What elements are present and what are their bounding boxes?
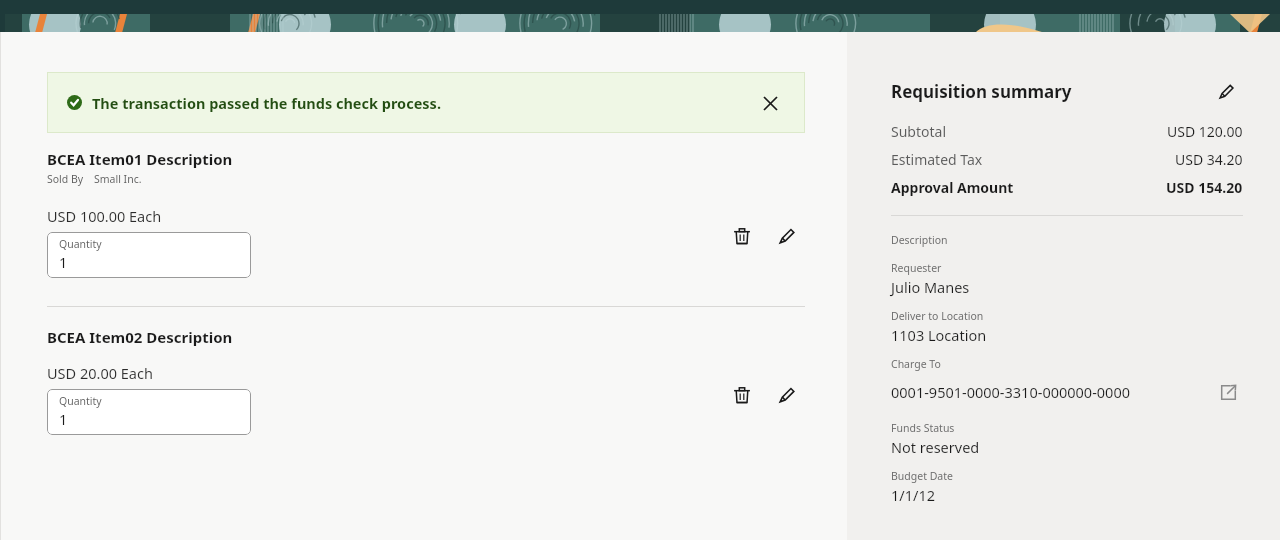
staticText: 0001-9501-0000-3310-000000-0000 xyxy=(891,382,1130,402)
staticText: Julio Manes xyxy=(891,277,970,297)
button[interactable]: Delete item xyxy=(724,377,760,413)
button[interactable]: Open charge account details xyxy=(1213,377,1243,407)
staticText: Charge To xyxy=(891,357,941,371)
staticText: BCEA Item01 Description xyxy=(47,149,233,169)
staticText: USD 120.00 xyxy=(1167,122,1243,141)
staticText: 1/1/12 xyxy=(891,485,935,505)
staticText: Funds Status xyxy=(891,421,955,435)
staticText: USD 34.20 xyxy=(1175,150,1243,169)
staticText: Approval Amount xyxy=(891,178,1014,197)
staticText: Sold By xyxy=(47,172,84,186)
staticText: Quantity xyxy=(59,237,102,251)
staticText: Estimated Tax xyxy=(891,150,983,169)
button[interactable]: Edit requisition summary xyxy=(1209,74,1243,108)
staticText: The transaction passed the funds check p… xyxy=(92,93,441,113)
staticText: Quantity xyxy=(59,394,102,408)
staticText: BCEA Item02 Description xyxy=(47,327,233,347)
button[interactable]: Edit item xyxy=(769,377,805,413)
staticText: USD 154.20 xyxy=(1166,178,1243,197)
staticText: Small Inc. xyxy=(94,172,142,186)
button[interactable]: Dismiss message xyxy=(755,88,785,118)
button[interactable]: Quantity xyxy=(47,389,251,435)
staticText: USD 100.00 Each xyxy=(47,206,162,226)
staticText: Requester xyxy=(891,261,942,275)
button[interactable]: Delete item xyxy=(724,218,760,254)
staticText: 1103 Location xyxy=(891,325,987,345)
staticText: Subtotal xyxy=(891,122,946,141)
staticText: Not reserved xyxy=(891,437,980,457)
staticText: Budget Date xyxy=(891,469,953,483)
staticText: 1 xyxy=(59,252,68,272)
staticText: USD 20.00 Each xyxy=(47,363,153,383)
button[interactable]: Quantity xyxy=(47,232,251,278)
staticText: Deliver to Location xyxy=(891,309,984,323)
staticText: Requisition summary xyxy=(891,80,1072,103)
button[interactable]: Edit item xyxy=(769,218,805,254)
staticText: 1 xyxy=(59,409,68,429)
staticText: Description xyxy=(891,233,948,247)
